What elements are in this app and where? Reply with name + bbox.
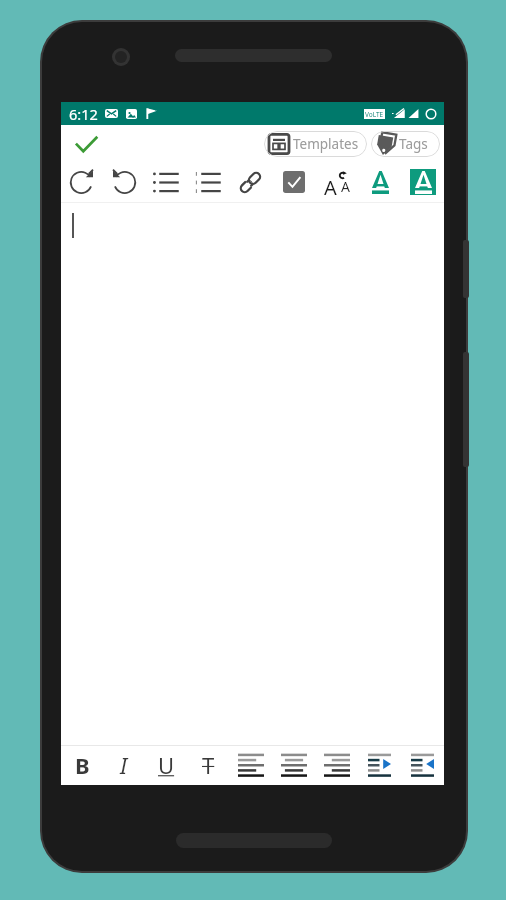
- button[interactable]: Checkbox: [272, 162, 315, 202]
- button[interactable]: Strikethrough: [187, 745, 229, 785]
- button[interactable]: Templates: [264, 131, 367, 157]
- button[interactable]: Numbered list: [187, 162, 229, 202]
- staticText: VoLTE: [365, 110, 384, 119]
- button[interactable]: Save note: [67, 127, 105, 160]
- button[interactable]: Text color: [358, 162, 401, 202]
- button[interactable]: Align left: [229, 745, 272, 785]
- button[interactable]: Italic: [103, 745, 145, 785]
- staticText: T: [202, 750, 215, 780]
- button[interactable]: Undo: [103, 162, 145, 202]
- button[interactable]: Increase indent: [358, 745, 401, 785]
- staticText: Templates: [293, 135, 359, 153]
- button[interactable]: Bold: [61, 745, 103, 785]
- staticText: B: [75, 750, 90, 780]
- staticText: U: [158, 750, 175, 780]
- staticText: A: [341, 177, 350, 196]
- staticText: Tags: [399, 135, 428, 153]
- button[interactable]: Text size: [315, 162, 358, 202]
- button[interactable]: Insert link: [229, 162, 272, 202]
- button[interactable]: Highlight color: [401, 162, 444, 202]
- button[interactable]: Align center: [272, 745, 315, 785]
- staticText: 6:12: [69, 104, 98, 124]
- button[interactable]: Underline: [145, 745, 187, 785]
- button[interactable]: Bulleted list: [145, 162, 187, 202]
- button[interactable]: Align right: [315, 745, 358, 785]
- staticText: I: [120, 750, 128, 780]
- button[interactable]: Decrease indent: [401, 745, 444, 785]
- button[interactable]: Tags: [371, 131, 440, 157]
- button[interactable]: Redo: [61, 162, 103, 202]
- staticText: A: [324, 174, 337, 196]
